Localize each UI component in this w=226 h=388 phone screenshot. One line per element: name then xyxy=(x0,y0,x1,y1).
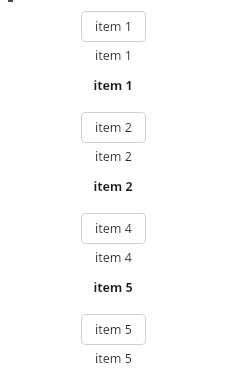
staticText: item 1 xyxy=(95,47,132,64)
button[interactable]: item 2 xyxy=(81,112,146,143)
button[interactable]: item 5 xyxy=(81,314,146,345)
staticText: item 4 xyxy=(95,249,132,266)
staticText: item 2 xyxy=(93,178,133,195)
button[interactable]: item 1 xyxy=(81,11,146,42)
staticText: item 2 xyxy=(95,148,132,165)
staticText: item 5 xyxy=(95,321,132,338)
staticText: item 1 xyxy=(95,18,132,35)
staticText: item 4 xyxy=(95,220,132,237)
staticText: item 1 xyxy=(93,77,133,94)
staticText: item 5 xyxy=(93,279,133,296)
button[interactable]: item 4 xyxy=(81,213,146,244)
staticText: item 2 xyxy=(95,119,132,136)
staticText: item 5 xyxy=(95,350,132,367)
